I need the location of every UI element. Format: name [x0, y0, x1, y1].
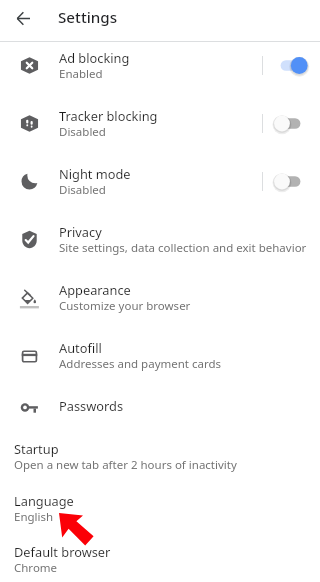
staticText: Appearance [59, 281, 131, 298]
button[interactable]: Off [273, 111, 310, 136]
staticText: Settings [58, 7, 118, 28]
button[interactable]: Appearance [0, 274, 320, 332]
staticText: Privacy [59, 223, 102, 240]
button[interactable]: Language [0, 491, 320, 542]
staticText: Passwords [59, 397, 124, 414]
staticText: Open a new tab after 2 hours of inactivi… [14, 457, 237, 473]
staticText: Addresses and payment cards [59, 356, 222, 372]
staticText: Language [14, 492, 74, 509]
staticText: Default browser [14, 543, 111, 560]
button[interactable]: Off [273, 169, 310, 194]
button[interactable]: On [273, 53, 310, 78]
button[interactable]: Default browser [0, 542, 320, 582]
staticText: Tracker blocking [59, 107, 158, 124]
button[interactable]: Passwords [0, 390, 320, 439]
button[interactable]: Night mode [0, 158, 320, 216]
staticText: Disabled [59, 124, 106, 140]
button[interactable]: Startup [0, 439, 320, 491]
staticText: Autofill [59, 339, 102, 356]
staticText: Night mode [59, 165, 131, 182]
button[interactable]: Ad blocking [0, 42, 320, 100]
staticText: Ad blocking [59, 49, 130, 66]
staticText: Chrome [14, 560, 58, 576]
staticText: English [14, 509, 54, 525]
button[interactable]: Privacy [0, 216, 320, 274]
staticText: Disabled [59, 182, 106, 198]
staticText: Customize your browser [59, 298, 191, 314]
button[interactable]: Navigate up [6, 1, 40, 35]
staticText: Enabled [59, 66, 103, 82]
staticText: Startup [14, 440, 59, 457]
staticText: Site settings, data collection and exit … [59, 240, 307, 256]
button[interactable]: Tracker blocking [0, 100, 320, 158]
button[interactable]: Autofill [0, 332, 320, 390]
